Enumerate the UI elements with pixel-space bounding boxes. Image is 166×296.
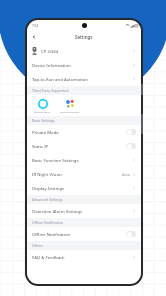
staticText: Offline Notification: [32, 231, 126, 237]
staticText: amazon alexa: [34, 110, 51, 113]
staticText: Google assistant: [60, 110, 80, 113]
button[interactable]: FAQ & Feedback: [27, 250, 141, 264]
button[interactable]: Offline Notification: [27, 227, 141, 241]
button[interactable]: Toggle switch: [126, 143, 136, 149]
staticText: 7:54: [32, 24, 39, 28]
staticText: Basic Settings: [32, 118, 55, 123]
staticText: Display Settings: [32, 185, 132, 191]
staticText: CP-G344: [41, 48, 132, 54]
button[interactable]: Basic Function Settings: [27, 153, 141, 167]
staticText: IR Night Vision: [32, 171, 122, 177]
button[interactable]: Amazon Alexa: [34, 99, 51, 113]
button[interactable]: Device Information: [27, 58, 141, 72]
button[interactable]: Toggle switch: [126, 129, 136, 135]
button[interactable]: Display Settings: [27, 181, 141, 195]
staticText: Settings: [75, 34, 93, 40]
button[interactable]: Static IP: [27, 139, 141, 153]
staticText: Advanced Settings: [32, 197, 63, 202]
staticText: Offline Notification: [32, 220, 64, 225]
button[interactable]: Private Mode: [27, 125, 141, 139]
button[interactable]: IR Night Vision: [27, 167, 141, 181]
button[interactable]: CP-G344: [27, 43, 141, 58]
staticText: Auto: [122, 172, 130, 177]
button[interactable]: Back: [30, 33, 38, 41]
button[interactable]: Toggle switch: [126, 231, 136, 237]
staticText: Private Mode: [32, 129, 126, 135]
staticText: Device Information: [32, 62, 132, 68]
staticText: FAQ & Feedback: [32, 254, 132, 260]
button[interactable]: Tap-to-Run and Automation: [27, 72, 141, 86]
staticText: Third-Party Supported: [32, 88, 69, 93]
staticText: Others: [32, 243, 44, 248]
staticText: Tap-to-Run and Automation: [32, 76, 132, 82]
button[interactable]: Google Assistant: [60, 99, 80, 113]
staticText: Basic Function Settings: [32, 157, 132, 163]
staticText: Static IP: [32, 143, 126, 149]
button[interactable]: Detection Alarm Settings: [27, 204, 141, 218]
staticText: Detection Alarm Settings: [32, 208, 132, 214]
